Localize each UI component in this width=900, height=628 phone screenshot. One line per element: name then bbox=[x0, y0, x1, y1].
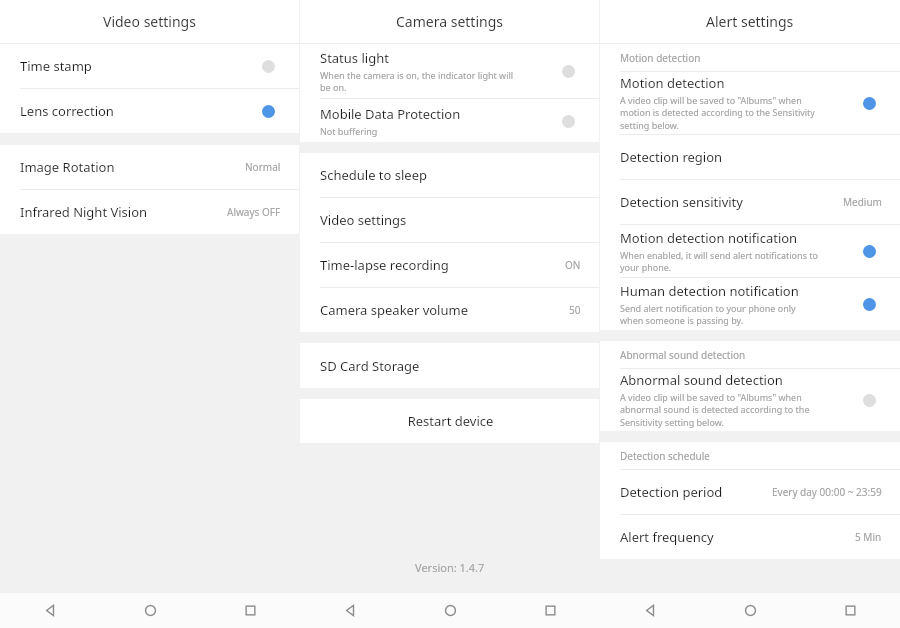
button[interactable]: Recents bbox=[200, 593, 300, 628]
staticText: Motion detection bbox=[620, 51, 701, 65]
button[interactable]: Mobile Data Protection bbox=[300, 99, 599, 142]
button[interactable]: Detection region bbox=[600, 135, 900, 179]
button[interactable]: Time-lapse recording bbox=[300, 243, 599, 287]
button[interactable]: Switch off bbox=[555, 108, 581, 134]
staticText: Abnormal sound detection bbox=[620, 348, 746, 362]
staticText: Video settings bbox=[320, 211, 407, 229]
button[interactable]: Restart device bbox=[300, 399, 599, 443]
button[interactable]: Human detection notification bbox=[600, 278, 900, 330]
staticText: SD Card Storage bbox=[320, 357, 420, 375]
staticText: Alert frequency bbox=[620, 528, 714, 546]
button[interactable]: Image Rotation bbox=[0, 145, 299, 189]
button[interactable]: Schedule to sleep bbox=[300, 153, 599, 197]
staticText: Image Rotation bbox=[20, 158, 115, 176]
button[interactable]: Alert frequency bbox=[600, 515, 900, 559]
button[interactable]: Switch off bbox=[555, 58, 581, 84]
button[interactable]: Infrared Night Vision bbox=[0, 190, 299, 234]
staticText: Alert settings bbox=[706, 12, 794, 31]
button[interactable]: Detection sensitivity bbox=[600, 180, 900, 224]
button[interactable]: Lens correction bbox=[0, 89, 299, 133]
staticText: Normal bbox=[245, 160, 281, 174]
button[interactable]: Home bbox=[100, 593, 200, 628]
button[interactable]: Recents bbox=[500, 593, 600, 628]
staticText: Motion detection notification bbox=[620, 229, 798, 247]
staticText: Detection region bbox=[620, 148, 723, 166]
staticText: Time-lapse recording bbox=[320, 256, 449, 274]
staticText: Motion detection bbox=[620, 74, 725, 92]
staticText: Restart device bbox=[320, 412, 581, 430]
button[interactable]: Video settings bbox=[300, 198, 599, 242]
staticText: A video clip will be saved to "Albums" w… bbox=[620, 94, 815, 132]
staticText: Send alert notification to your phone on… bbox=[620, 302, 796, 327]
staticText: 50 bbox=[569, 303, 581, 317]
staticText: Human detection notification bbox=[620, 282, 799, 300]
button[interactable]: Switch on bbox=[856, 291, 882, 317]
staticText: Infrared Night Vision bbox=[20, 203, 148, 221]
button[interactable]: Switch off bbox=[856, 387, 882, 413]
button[interactable]: Motion detection notification bbox=[600, 225, 900, 277]
button[interactable]: Switch off bbox=[255, 53, 281, 79]
staticText: When enabled, it will send alert notific… bbox=[620, 249, 818, 274]
staticText: Camera speaker volume bbox=[320, 301, 468, 319]
staticText: Not buffering bbox=[320, 125, 378, 137]
staticText: Camera settings bbox=[396, 12, 503, 31]
staticText: 5 Min bbox=[855, 530, 882, 544]
staticText: Video settings bbox=[103, 12, 196, 31]
staticText: Detection schedule bbox=[620, 449, 710, 463]
staticText: Abnormal sound detection bbox=[620, 371, 783, 389]
button[interactable]: Home bbox=[700, 593, 800, 628]
staticText: Every day 00:00 ~ 23:59 bbox=[772, 485, 882, 499]
staticText: Schedule to sleep bbox=[320, 166, 428, 184]
button[interactable]: Motion detection bbox=[600, 72, 900, 134]
button[interactable]: Recents bbox=[800, 593, 900, 628]
staticText: Mobile Data Protection bbox=[320, 105, 461, 123]
button[interactable]: Back bbox=[300, 593, 400, 628]
staticText: Always OFF bbox=[227, 205, 281, 219]
staticText: Medium bbox=[843, 195, 882, 209]
button[interactable]: Status light bbox=[300, 44, 599, 98]
staticText: A video clip will be saved to "Albums" w… bbox=[620, 391, 810, 429]
staticText: Detection sensitivity bbox=[620, 193, 743, 211]
staticText: Lens correction bbox=[20, 102, 114, 120]
staticText: Version: 1.4.7 bbox=[415, 560, 485, 575]
button[interactable]: Detection period bbox=[600, 470, 900, 514]
button[interactable]: Back bbox=[0, 593, 100, 628]
button[interactable]: Abnormal sound detection bbox=[600, 369, 900, 431]
staticText: Detection period bbox=[620, 483, 723, 501]
button[interactable]: Time stamp bbox=[0, 44, 299, 88]
staticText: Status light bbox=[320, 49, 389, 67]
button[interactable]: Switch on bbox=[856, 90, 882, 116]
button[interactable]: Camera speaker volume bbox=[300, 288, 599, 332]
staticText: ON bbox=[565, 258, 581, 272]
button[interactable]: Switch on bbox=[255, 98, 281, 124]
button[interactable]: Switch on bbox=[856, 238, 882, 264]
staticText: When the camera is on, the indicator lig… bbox=[320, 69, 514, 94]
staticText: Time stamp bbox=[20, 57, 92, 75]
button[interactable]: SD Card Storage bbox=[300, 343, 599, 388]
button[interactable]: Back bbox=[600, 593, 700, 628]
button[interactable]: Home bbox=[400, 593, 500, 628]
